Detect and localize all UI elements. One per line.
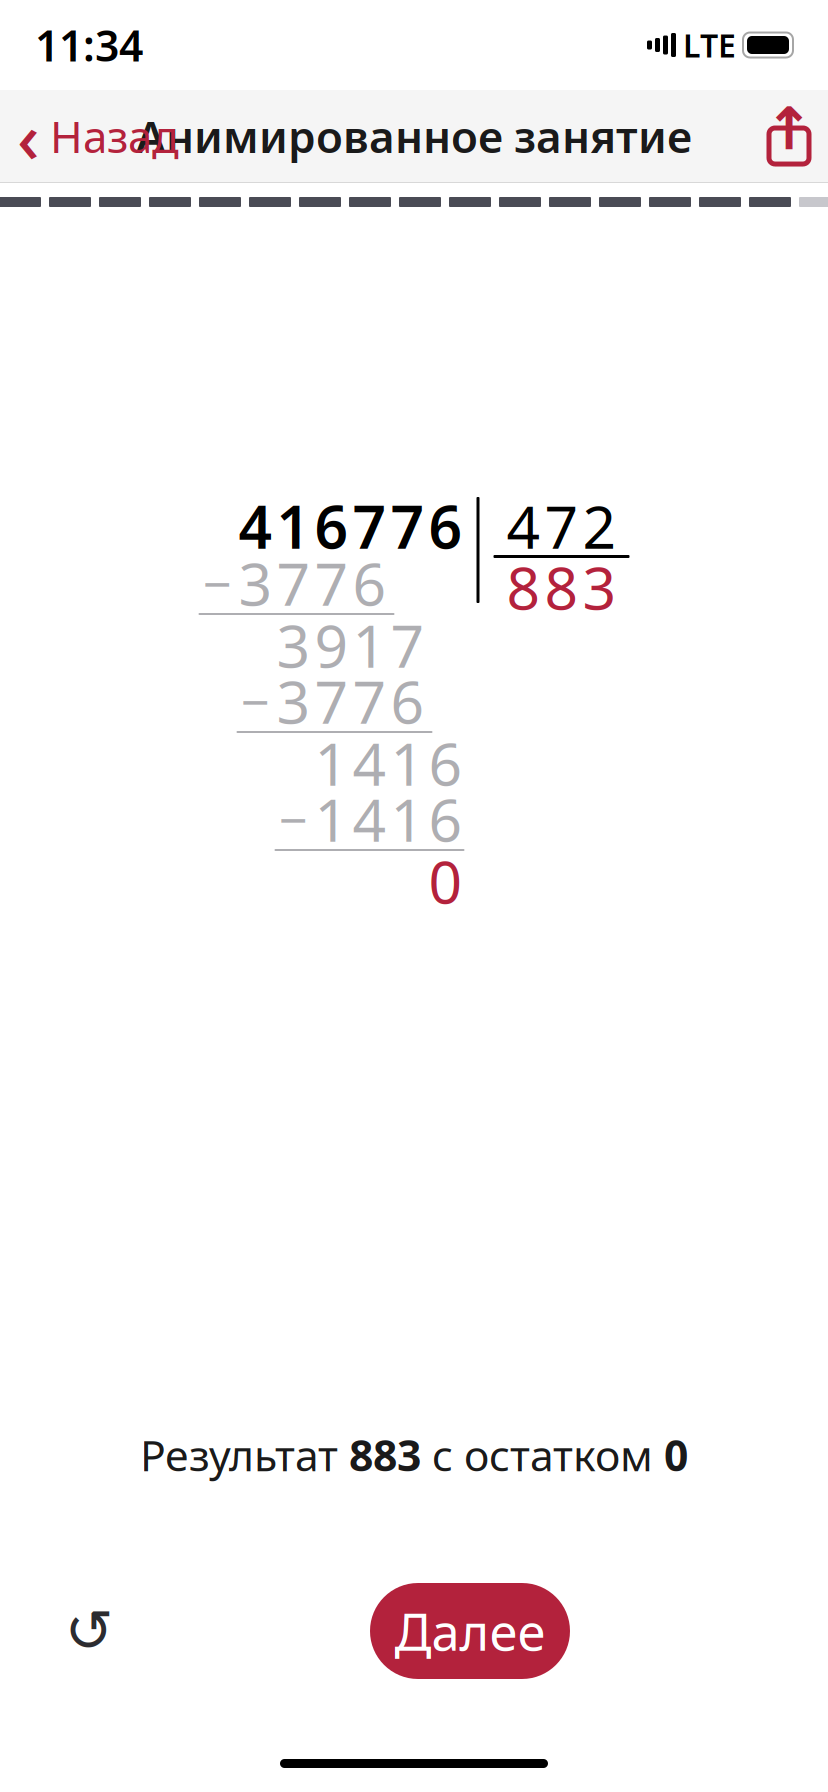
staticText: 6 [314, 487, 348, 565]
staticText: LTE [683, 24, 736, 66]
staticText: 7 [544, 487, 578, 565]
button[interactable]: Далее [370, 1583, 570, 1679]
staticText: − [203, 549, 232, 617]
staticText: 3 [582, 548, 616, 626]
staticText: 4 [352, 780, 386, 858]
staticText: 7 [276, 544, 310, 622]
staticText: ‹ [17, 90, 40, 182]
staticText: 4 [238, 487, 272, 565]
staticText: 1 [390, 780, 424, 858]
staticText: − [241, 667, 270, 735]
staticText: 3 [238, 544, 272, 622]
staticText: 7 [352, 487, 386, 565]
staticText: Результат [140, 1426, 349, 1483]
staticText: 1 [352, 606, 386, 684]
staticText: 6 [390, 662, 424, 740]
staticText: 7 [390, 606, 424, 684]
staticText: 4 [506, 487, 540, 565]
staticText: 0 [664, 1426, 688, 1483]
staticText: 9 [314, 606, 348, 684]
staticText: с остатком [421, 1426, 664, 1483]
staticText: 6 [428, 724, 462, 802]
staticText: 6 [352, 544, 386, 622]
staticText: − [279, 785, 308, 853]
button[interactable]: ‹ [9, 82, 187, 190]
staticText: ↑ [764, 96, 813, 162]
staticText: 7 [390, 487, 424, 565]
staticText: 11:34 [35, 17, 143, 73]
staticText: 8 [544, 548, 578, 626]
staticText: 4 [352, 724, 386, 802]
staticText: Далее [394, 1597, 545, 1665]
button[interactable]: Отменить [41, 1583, 137, 1679]
button[interactable]: Поделиться [759, 103, 819, 169]
staticText: Анимированное занятие [136, 107, 692, 165]
staticText: 7 [314, 662, 348, 740]
staticText: 1 [314, 724, 348, 802]
staticText: 3 [276, 662, 310, 740]
staticText: 6 [428, 780, 462, 858]
staticText: 0 [428, 842, 462, 920]
staticText: 7 [352, 662, 386, 740]
staticText: 1 [276, 487, 310, 565]
staticText: 883 [349, 1426, 421, 1483]
staticText: 6 [428, 487, 462, 565]
staticText: 1 [390, 724, 424, 802]
staticText: 7 [314, 544, 348, 622]
staticText: 2 [582, 487, 616, 565]
staticText: 3 [276, 606, 310, 684]
staticText: ↺ [64, 1598, 113, 1664]
staticText: 8 [506, 548, 540, 626]
staticText: Назад [50, 107, 179, 165]
staticText: 1 [314, 780, 348, 858]
